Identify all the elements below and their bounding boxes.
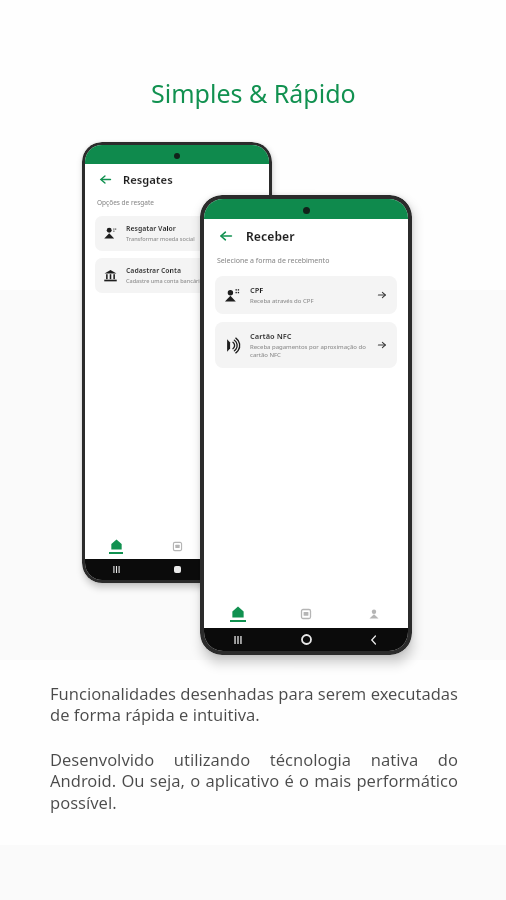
staticText: Selecione a forma de recebimento [217, 256, 330, 266]
staticText: Opções de resgate [97, 198, 154, 207]
staticText: Receba através do CPF [250, 297, 314, 305]
staticText: Cartão NFC [250, 331, 292, 341]
button[interactable]: Perfil [340, 599, 408, 628]
staticText: Resgatar Valor [126, 224, 176, 233]
staticText: Resgates [123, 172, 173, 187]
button[interactable]: Voltar [217, 227, 235, 245]
button[interactable]: Mensagens [147, 533, 208, 559]
staticText: Desenvolvido utilizando técnologia nativ… [50, 748, 458, 814]
staticText: Receber [246, 228, 295, 244]
staticText: Cadastre uma conta bancária para resgate [126, 277, 238, 285]
staticText: Transformar moeda social [126, 235, 195, 243]
button[interactable]: Cadastrar Conta [95, 258, 259, 293]
button[interactable]: Mensagens [272, 599, 340, 628]
staticText: Simples & Rápido [151, 76, 356, 110]
staticText: Cadastrar Conta [126, 266, 181, 275]
staticText: Receba pagamentos por aproximação do car… [250, 343, 371, 359]
button[interactable]: CPF [215, 276, 397, 314]
staticText: Funcionalidades desenhadas para serem ex… [50, 682, 458, 726]
button[interactable]: Resgatar Valor [95, 216, 259, 251]
button[interactable]: Cartão NFC [215, 322, 397, 368]
button[interactable]: Voltar [97, 171, 113, 187]
staticText: CPF [250, 285, 264, 295]
button[interactable]: Início [204, 599, 272, 628]
button[interactable]: Início [85, 533, 147, 559]
